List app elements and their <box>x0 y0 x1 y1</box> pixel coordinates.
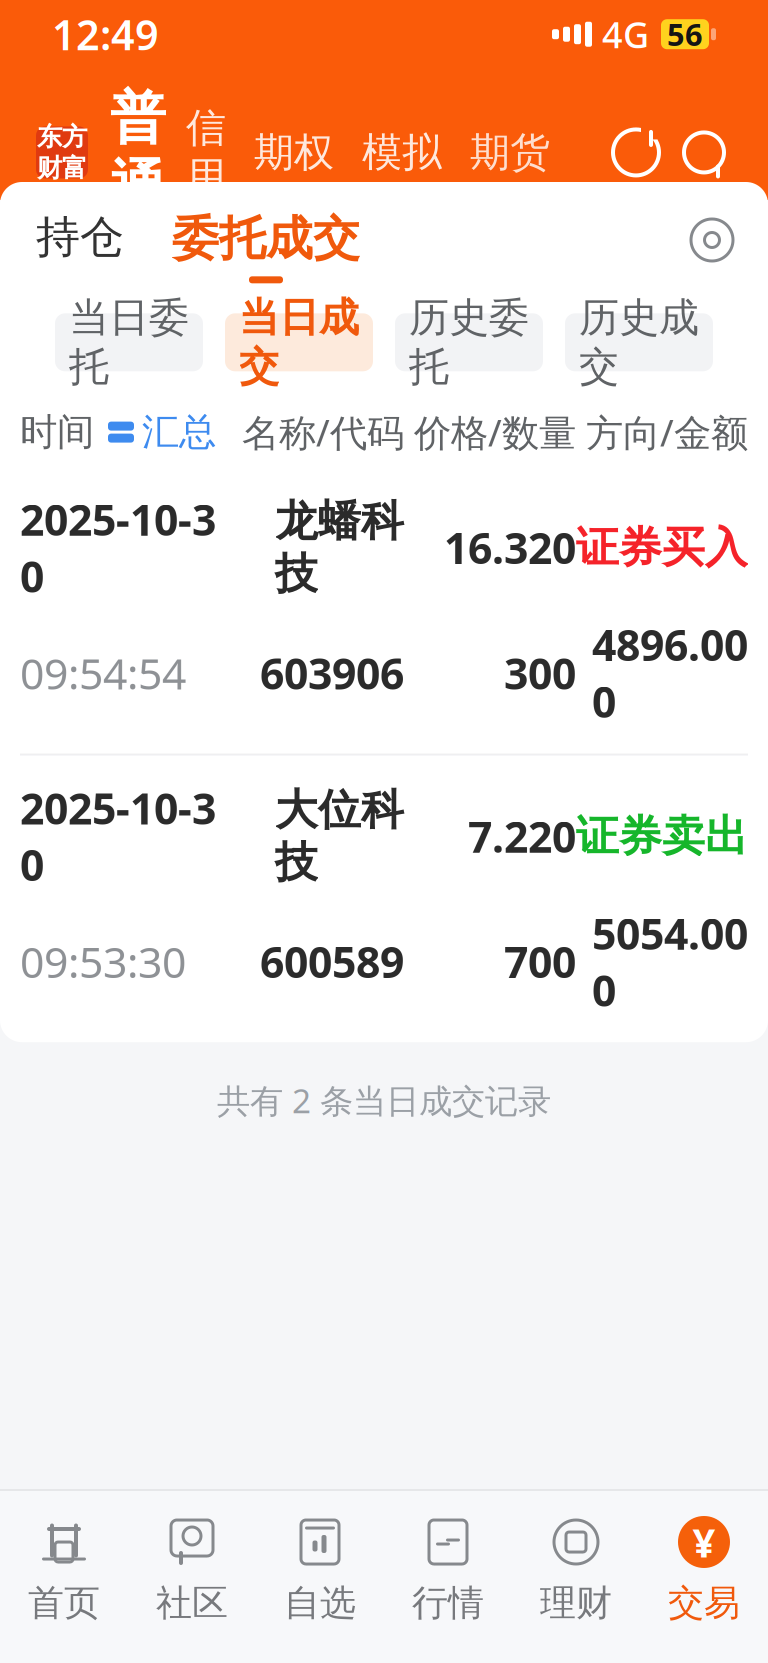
staticText: 300 <box>504 644 576 701</box>
staticText: 历史成交 <box>579 293 699 391</box>
button[interactable]: 理财 <box>512 1509 640 1629</box>
staticText: 方向/金额 <box>586 407 748 457</box>
staticText: 603906 <box>260 644 404 701</box>
staticText: 委托成交 <box>172 210 360 267</box>
staticText: 证券卖出 <box>576 810 748 862</box>
button[interactable]: 汇总 <box>94 409 216 455</box>
button[interactable]: 委托成交 <box>166 210 366 283</box>
button[interactable]: 当日成交 <box>225 313 373 371</box>
staticText: 东方 <box>37 121 87 152</box>
button[interactable]: ¥ <box>640 1509 768 1629</box>
staticText: 汇总 <box>142 409 216 455</box>
button[interactable]: 期权 <box>240 128 348 177</box>
staticText: 时间 <box>20 409 94 455</box>
button[interactable]: 社区 <box>128 1509 256 1629</box>
staticText: 名称/代码 <box>242 407 404 457</box>
button[interactable]: 当日委托 <box>55 313 203 371</box>
staticText: 证券买入 <box>576 521 748 574</box>
staticText: 2025-10-30 <box>20 779 216 893</box>
staticText: 模拟 <box>362 128 442 177</box>
staticText: 56 <box>667 14 703 55</box>
staticText: 12:49 <box>52 7 159 62</box>
button[interactable]: 2025-10-30 <box>0 467 768 753</box>
staticText: 09:53:30 <box>20 933 186 990</box>
staticText: 2025-10-30 <box>20 491 216 604</box>
staticText: 大位科技 <box>275 784 404 889</box>
staticText: 期货 <box>470 128 550 177</box>
button[interactable]: 2025-10-30 <box>0 755 768 1042</box>
staticText: 09:54:54 <box>20 644 186 701</box>
button[interactable]: 历史委托 <box>395 313 543 371</box>
staticText: 信用 <box>186 103 226 202</box>
staticText: 历史委托 <box>409 293 529 391</box>
staticText: 7.220 <box>468 808 576 865</box>
staticText: 4896.000 <box>592 616 748 729</box>
staticText: 700 <box>504 933 576 990</box>
staticText: 持仓 <box>36 210 124 264</box>
button[interactable]: 模拟 <box>348 128 456 177</box>
staticText: 理财 <box>540 1581 612 1625</box>
staticText: ¥ <box>692 1515 715 1568</box>
staticText: 财富 <box>37 152 87 183</box>
staticText: 普通 <box>110 84 166 221</box>
staticText: 共有 2 条当日成交记录 <box>217 1078 551 1122</box>
button[interactable]: 刷新 <box>608 124 664 180</box>
staticText: 4G <box>602 10 649 58</box>
button[interactable]: 行情 <box>384 1509 512 1629</box>
button[interactable]: 持仓 <box>30 210 130 280</box>
button[interactable]: 信用 <box>172 103 240 202</box>
button[interactable]: 自选 <box>256 1509 384 1629</box>
staticText: 首页 <box>28 1581 100 1625</box>
staticText: 社区 <box>156 1581 228 1625</box>
staticText: 价格/数量 <box>414 407 576 457</box>
staticText: 当日成交 <box>239 293 359 391</box>
button[interactable]: 搜索 <box>676 124 732 180</box>
button[interactable]: 普通 <box>88 84 172 221</box>
staticText: 行情 <box>412 1581 484 1625</box>
button[interactable]: 历史成交 <box>565 313 713 371</box>
staticText: 当日委托 <box>69 293 189 391</box>
staticText: 交易 <box>668 1581 740 1625</box>
staticText: 16.320 <box>444 519 576 576</box>
staticText: 自选 <box>284 1581 356 1625</box>
staticText: 5054.000 <box>592 905 748 1018</box>
button[interactable]: 设置 <box>686 210 738 266</box>
staticText: 期权 <box>254 128 334 177</box>
staticText: 龙蟠科技 <box>275 495 404 600</box>
button[interactable]: 期货 <box>456 128 564 177</box>
staticText: 600589 <box>260 933 404 990</box>
button[interactable]: 首页 <box>0 1509 128 1629</box>
